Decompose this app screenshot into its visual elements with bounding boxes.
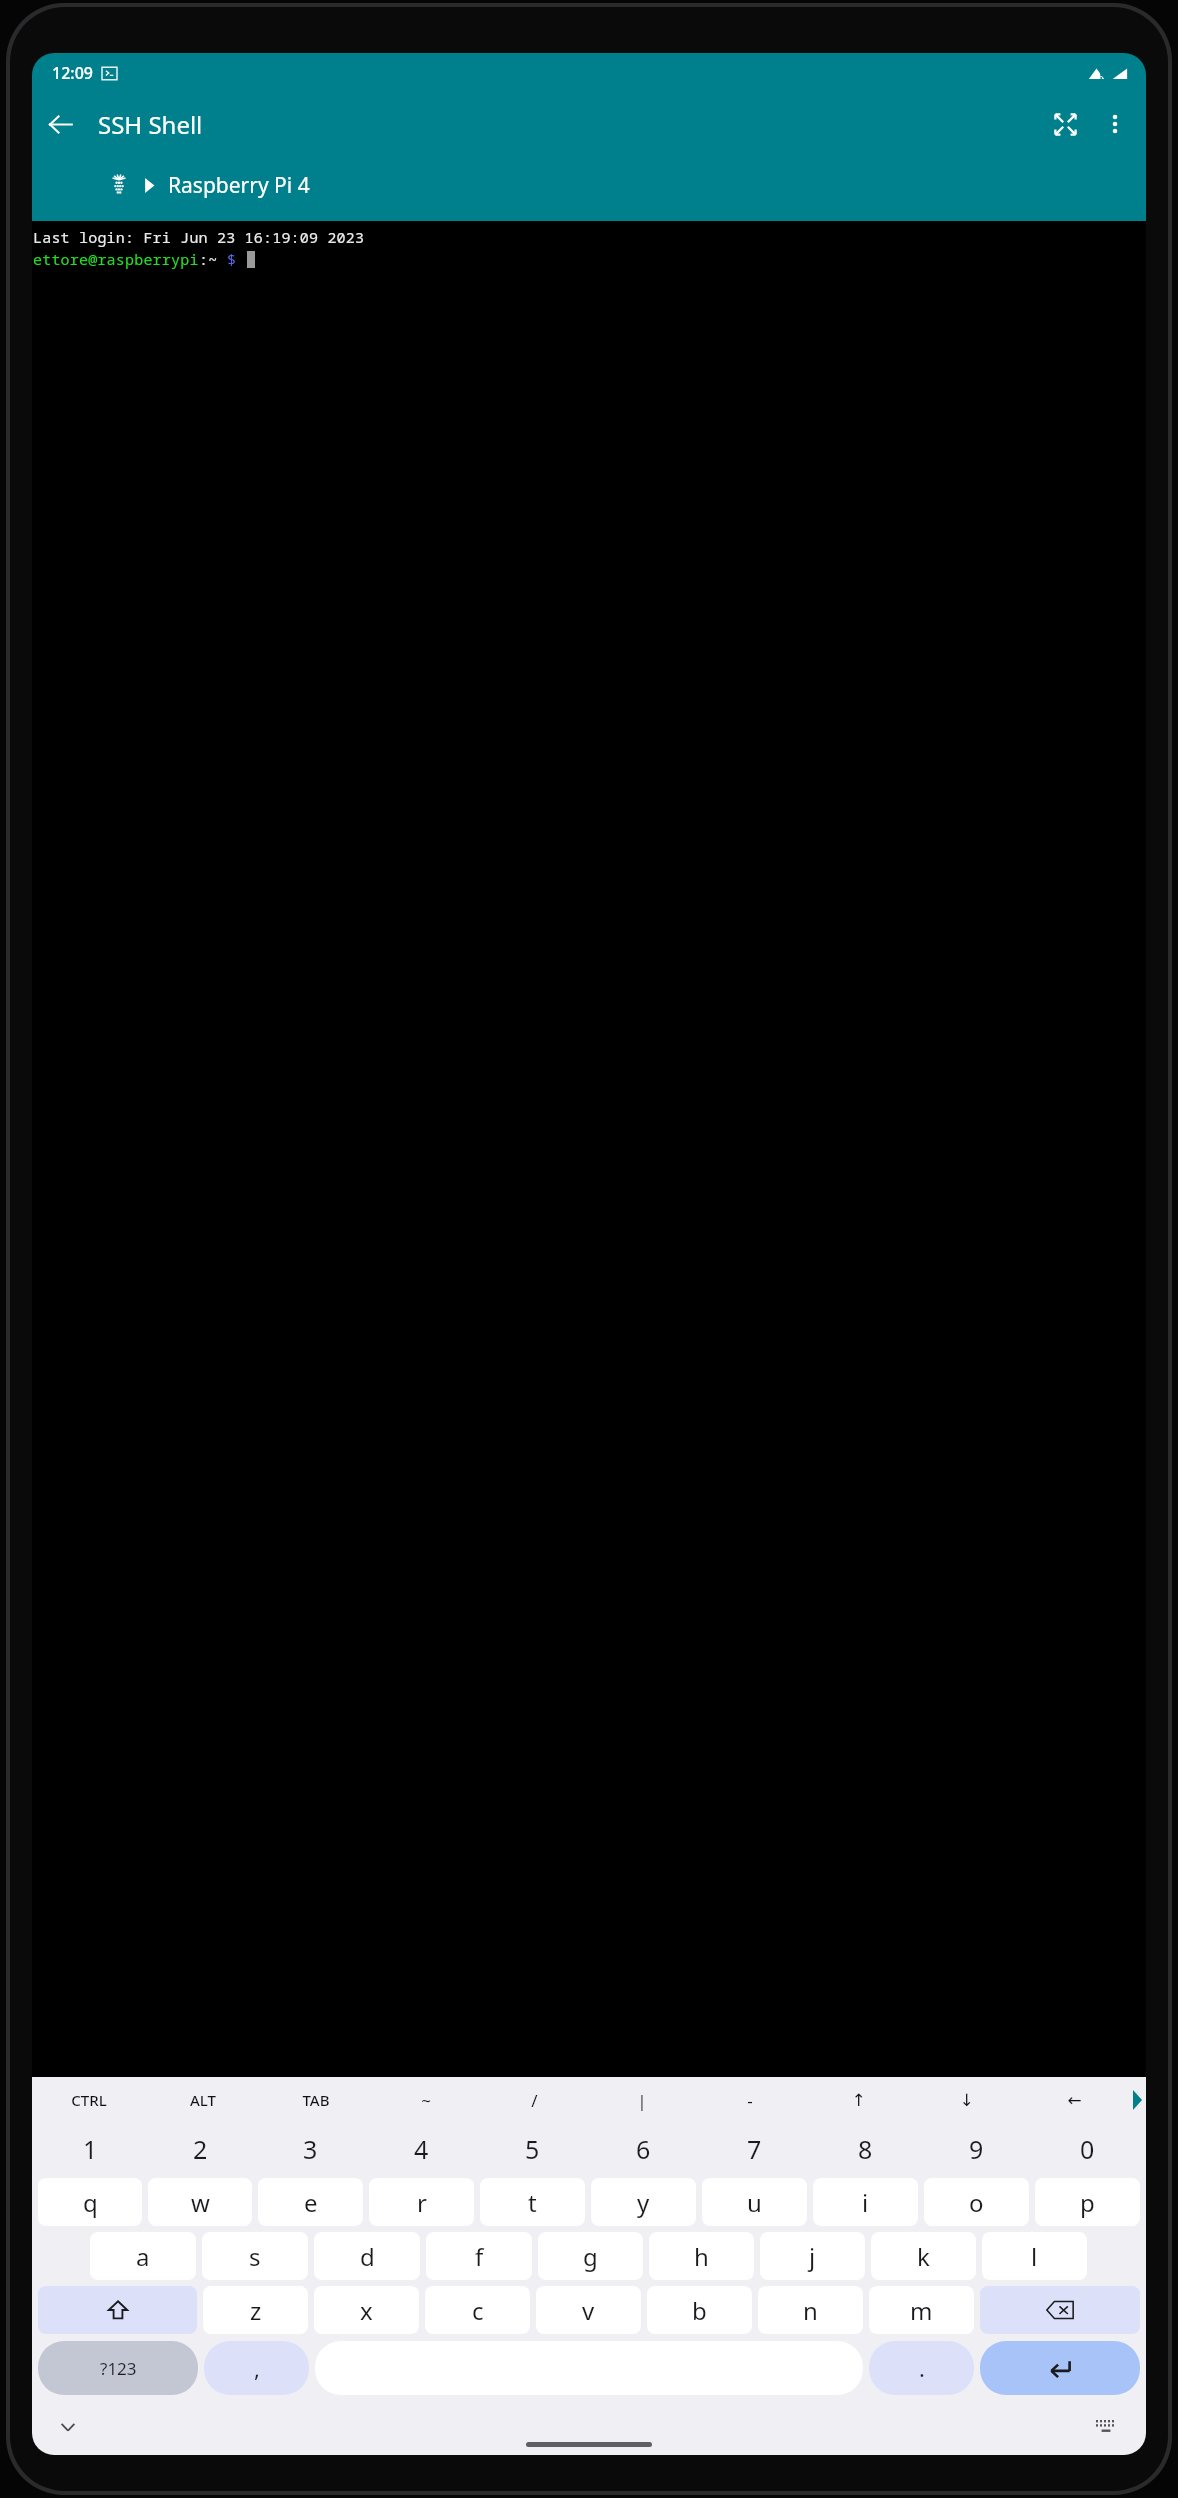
staticText: i	[862, 2186, 869, 2219]
button[interactable]: s	[202, 2232, 308, 2280]
staticText: u	[747, 2186, 762, 2219]
button[interactable]: p	[1035, 2178, 1140, 2226]
button[interactable]: Hide keyboard	[46, 2405, 90, 2449]
staticText: ←	[1067, 2090, 1082, 2110]
button[interactable]: ~	[372, 2077, 480, 2123]
staticText: 6	[636, 2132, 651, 2166]
button[interactable]: 2	[145, 2123, 255, 2175]
button[interactable]: v	[536, 2286, 641, 2334]
button[interactable]: i	[813, 2178, 918, 2226]
staticText: 9	[969, 2132, 984, 2166]
staticText: k	[917, 2240, 930, 2273]
button[interactable]: ←	[1020, 2077, 1128, 2123]
button[interactable]: w	[148, 2178, 252, 2226]
button[interactable]: Raspberry Pi 4	[32, 155, 1146, 215]
button[interactable]: Change keyboard	[1084, 2405, 1128, 2449]
staticText: CTRL	[71, 2090, 107, 2110]
button[interactable]: More options	[1090, 99, 1140, 149]
button[interactable]: 9	[921, 2123, 1032, 2175]
staticText: TAB	[302, 2090, 330, 2110]
staticText: a	[136, 2240, 150, 2273]
button[interactable]: j	[760, 2232, 865, 2280]
button[interactable]: u	[702, 2178, 807, 2226]
button[interactable]: 1	[35, 2123, 145, 2175]
button[interactable]: b	[647, 2286, 752, 2334]
staticText: 0	[1080, 2132, 1095, 2166]
button[interactable]: ↓	[912, 2077, 1020, 2123]
button[interactable]: o	[924, 2178, 1029, 2226]
button[interactable]: c	[425, 2286, 530, 2334]
button[interactable]: 8	[810, 2123, 921, 2175]
button[interactable]: k	[871, 2232, 976, 2280]
staticText: :~	[199, 249, 227, 269]
button[interactable]: ,	[204, 2341, 309, 2395]
button[interactable]: e	[258, 2178, 363, 2226]
staticText: q	[83, 2186, 98, 2219]
button[interactable]: n	[758, 2286, 863, 2334]
button[interactable]: y	[591, 2178, 696, 2226]
button[interactable]: t	[480, 2178, 585, 2226]
staticText: ,	[254, 2353, 260, 2383]
button[interactable]: g	[538, 2232, 643, 2280]
button[interactable]: /	[480, 2077, 588, 2123]
button[interactable]: More keys	[1128, 2077, 1146, 2123]
staticText: e	[304, 2186, 318, 2219]
staticText: SSH Shell	[98, 108, 203, 141]
button[interactable]: m	[869, 2286, 974, 2334]
staticText: ettore@raspberrypi	[33, 249, 199, 269]
button[interactable]: .	[869, 2341, 974, 2395]
button[interactable]: r	[369, 2178, 474, 2226]
staticText: 2	[193, 2132, 208, 2166]
button[interactable]: ALT	[146, 2077, 259, 2123]
button[interactable]: 7	[699, 2123, 810, 2175]
button[interactable]: x	[314, 2286, 419, 2334]
staticText: ↑	[851, 2090, 866, 2110]
staticText: f	[475, 2240, 484, 2273]
staticText: v	[582, 2294, 595, 2327]
staticText: 4	[414, 2132, 429, 2166]
staticText: 8	[858, 2132, 873, 2166]
button[interactable]: z	[203, 2286, 308, 2334]
staticText: h	[694, 2240, 709, 2273]
staticText: d	[360, 2240, 375, 2273]
button[interactable]: h	[649, 2232, 754, 2280]
button[interactable]: -	[696, 2077, 804, 2123]
button[interactable]: |	[588, 2077, 696, 2123]
button[interactable]: 3	[255, 2123, 366, 2175]
staticText: 7	[747, 2132, 762, 2166]
button[interactable]: d	[314, 2232, 420, 2280]
button[interactable]: a	[90, 2232, 196, 2280]
button[interactable]: 4	[366, 2123, 477, 2175]
button[interactable]: Back	[32, 96, 88, 152]
button[interactable]: Enter	[980, 2341, 1140, 2395]
button[interactable]: ↑	[804, 2077, 912, 2123]
button[interactable]: CTRL	[32, 2077, 146, 2123]
staticText: p	[1080, 2186, 1095, 2219]
button[interactable]: 5	[477, 2123, 588, 2175]
staticText: r	[417, 2186, 427, 2219]
button[interactable]: TAB	[259, 2077, 372, 2123]
staticText: ~	[421, 2089, 431, 2112]
staticText: t	[528, 2186, 537, 2219]
staticText: n	[803, 2294, 818, 2327]
staticText: Last login: Fri Jun 23 16:19:09 2023	[33, 227, 365, 247]
button[interactable]: 6	[588, 2123, 699, 2175]
staticText: /	[531, 2089, 538, 2112]
button[interactable]: Backspace	[980, 2286, 1140, 2334]
button[interactable]: Fullscreen	[1040, 99, 1090, 149]
button[interactable]: Shift	[38, 2286, 197, 2334]
staticText: b	[692, 2294, 707, 2327]
button[interactable]: 0	[1032, 2123, 1143, 2175]
staticText: m	[910, 2294, 933, 2327]
button[interactable]: f	[426, 2232, 532, 2280]
staticText: ↓	[959, 2090, 974, 2110]
staticText: l	[1031, 2240, 1038, 2273]
staticText: z	[250, 2294, 262, 2327]
button[interactable]: l	[982, 2232, 1087, 2280]
button[interactable]: ?123	[38, 2341, 198, 2395]
staticText: Raspberry Pi 4	[168, 171, 310, 200]
staticText: j	[809, 2240, 816, 2273]
staticText: c	[472, 2294, 484, 2327]
button[interactable]: q	[38, 2178, 142, 2226]
